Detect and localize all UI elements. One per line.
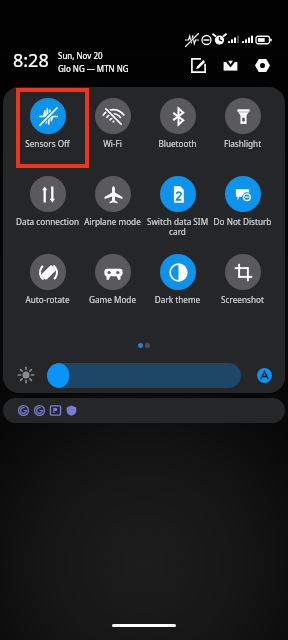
button[interactable]: Do Not Disturb [210, 165, 275, 227]
staticText: Glo NG — MTN NG [58, 63, 129, 74]
button[interactable]: Auto-rotate [15, 243, 80, 305]
button[interactable]: Dark theme [145, 243, 210, 305]
button[interactable]: Screenshot [210, 243, 275, 305]
staticText: Bluetooth [145, 138, 210, 149]
staticText: Flashlight [210, 138, 275, 149]
button[interactable]: Inbox [219, 54, 242, 77]
button[interactable]: Settings [251, 54, 274, 77]
staticText: Data connection [15, 216, 80, 227]
staticText: Airplane mode [80, 216, 145, 227]
staticText: Sun, Nov 20 [58, 50, 103, 61]
button[interactable]: Airplane mode [80, 165, 145, 227]
button[interactable]: Game Mode [80, 243, 145, 305]
button[interactable]: Data connection [15, 165, 80, 227]
staticText: Auto-rotate [15, 294, 80, 305]
staticText: Game Mode [80, 294, 145, 305]
staticText: Dark theme [145, 294, 210, 305]
button[interactable] [3, 398, 285, 423]
button[interactable]: Edit [187, 54, 210, 77]
button[interactable]: Sensors Off [15, 87, 80, 149]
button[interactable]: Bluetooth [145, 87, 210, 149]
button[interactable]: Auto brightness [257, 368, 272, 383]
staticText: Sensors Off [15, 138, 80, 149]
button[interactable]: Switch data SIM card [145, 165, 210, 237]
staticText: Screenshot [210, 294, 275, 305]
button[interactable]: Flashlight [210, 87, 275, 149]
staticText: 8:28 [13, 48, 49, 73]
staticText: Switch data SIM card [145, 216, 210, 237]
button[interactable]: Wi-Fi [80, 87, 145, 149]
staticText: Wi-Fi [80, 138, 145, 149]
button[interactable]: Brightness [47, 363, 241, 388]
staticText: Do Not Disturb [210, 216, 275, 227]
